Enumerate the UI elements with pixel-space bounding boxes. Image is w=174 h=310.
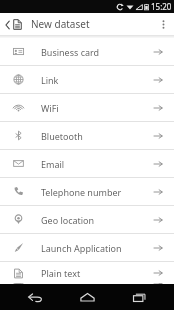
button[interactable]: Plain text: [0, 262, 174, 284]
button[interactable]: Launch Application: [0, 234, 174, 261]
button[interactable]: Navigate up: [3, 17, 24, 32]
staticText: Plain text: [41, 267, 81, 279]
staticText: Bluetooth: [41, 130, 83, 142]
button[interactable]: Telephone number: [0, 178, 174, 205]
button[interactable]: WiFi: [0, 94, 174, 121]
staticText: Geo location: [41, 214, 95, 226]
staticText: 15:20: [151, 1, 172, 12]
staticText: Link: [41, 74, 59, 86]
staticText: WiFi: [41, 102, 59, 114]
staticText: Business card: [41, 46, 100, 58]
button[interactable]: Geo location: [0, 206, 174, 233]
staticText: New dataset: [31, 17, 90, 31]
button[interactable]: Recent apps: [122, 284, 156, 310]
button[interactable]: More options: [152, 13, 174, 35]
staticText: Email: [41, 158, 65, 170]
staticText: Launch Application: [41, 242, 122, 254]
staticText: Telephone number: [41, 186, 122, 198]
button[interactable]: Business card: [0, 38, 174, 65]
button[interactable]: Back: [18, 284, 52, 310]
button[interactable]: Bluetooth: [0, 122, 174, 149]
button[interactable]: Link: [0, 66, 174, 93]
button[interactable]: Home: [70, 284, 104, 310]
button[interactable]: Email: [0, 150, 174, 177]
